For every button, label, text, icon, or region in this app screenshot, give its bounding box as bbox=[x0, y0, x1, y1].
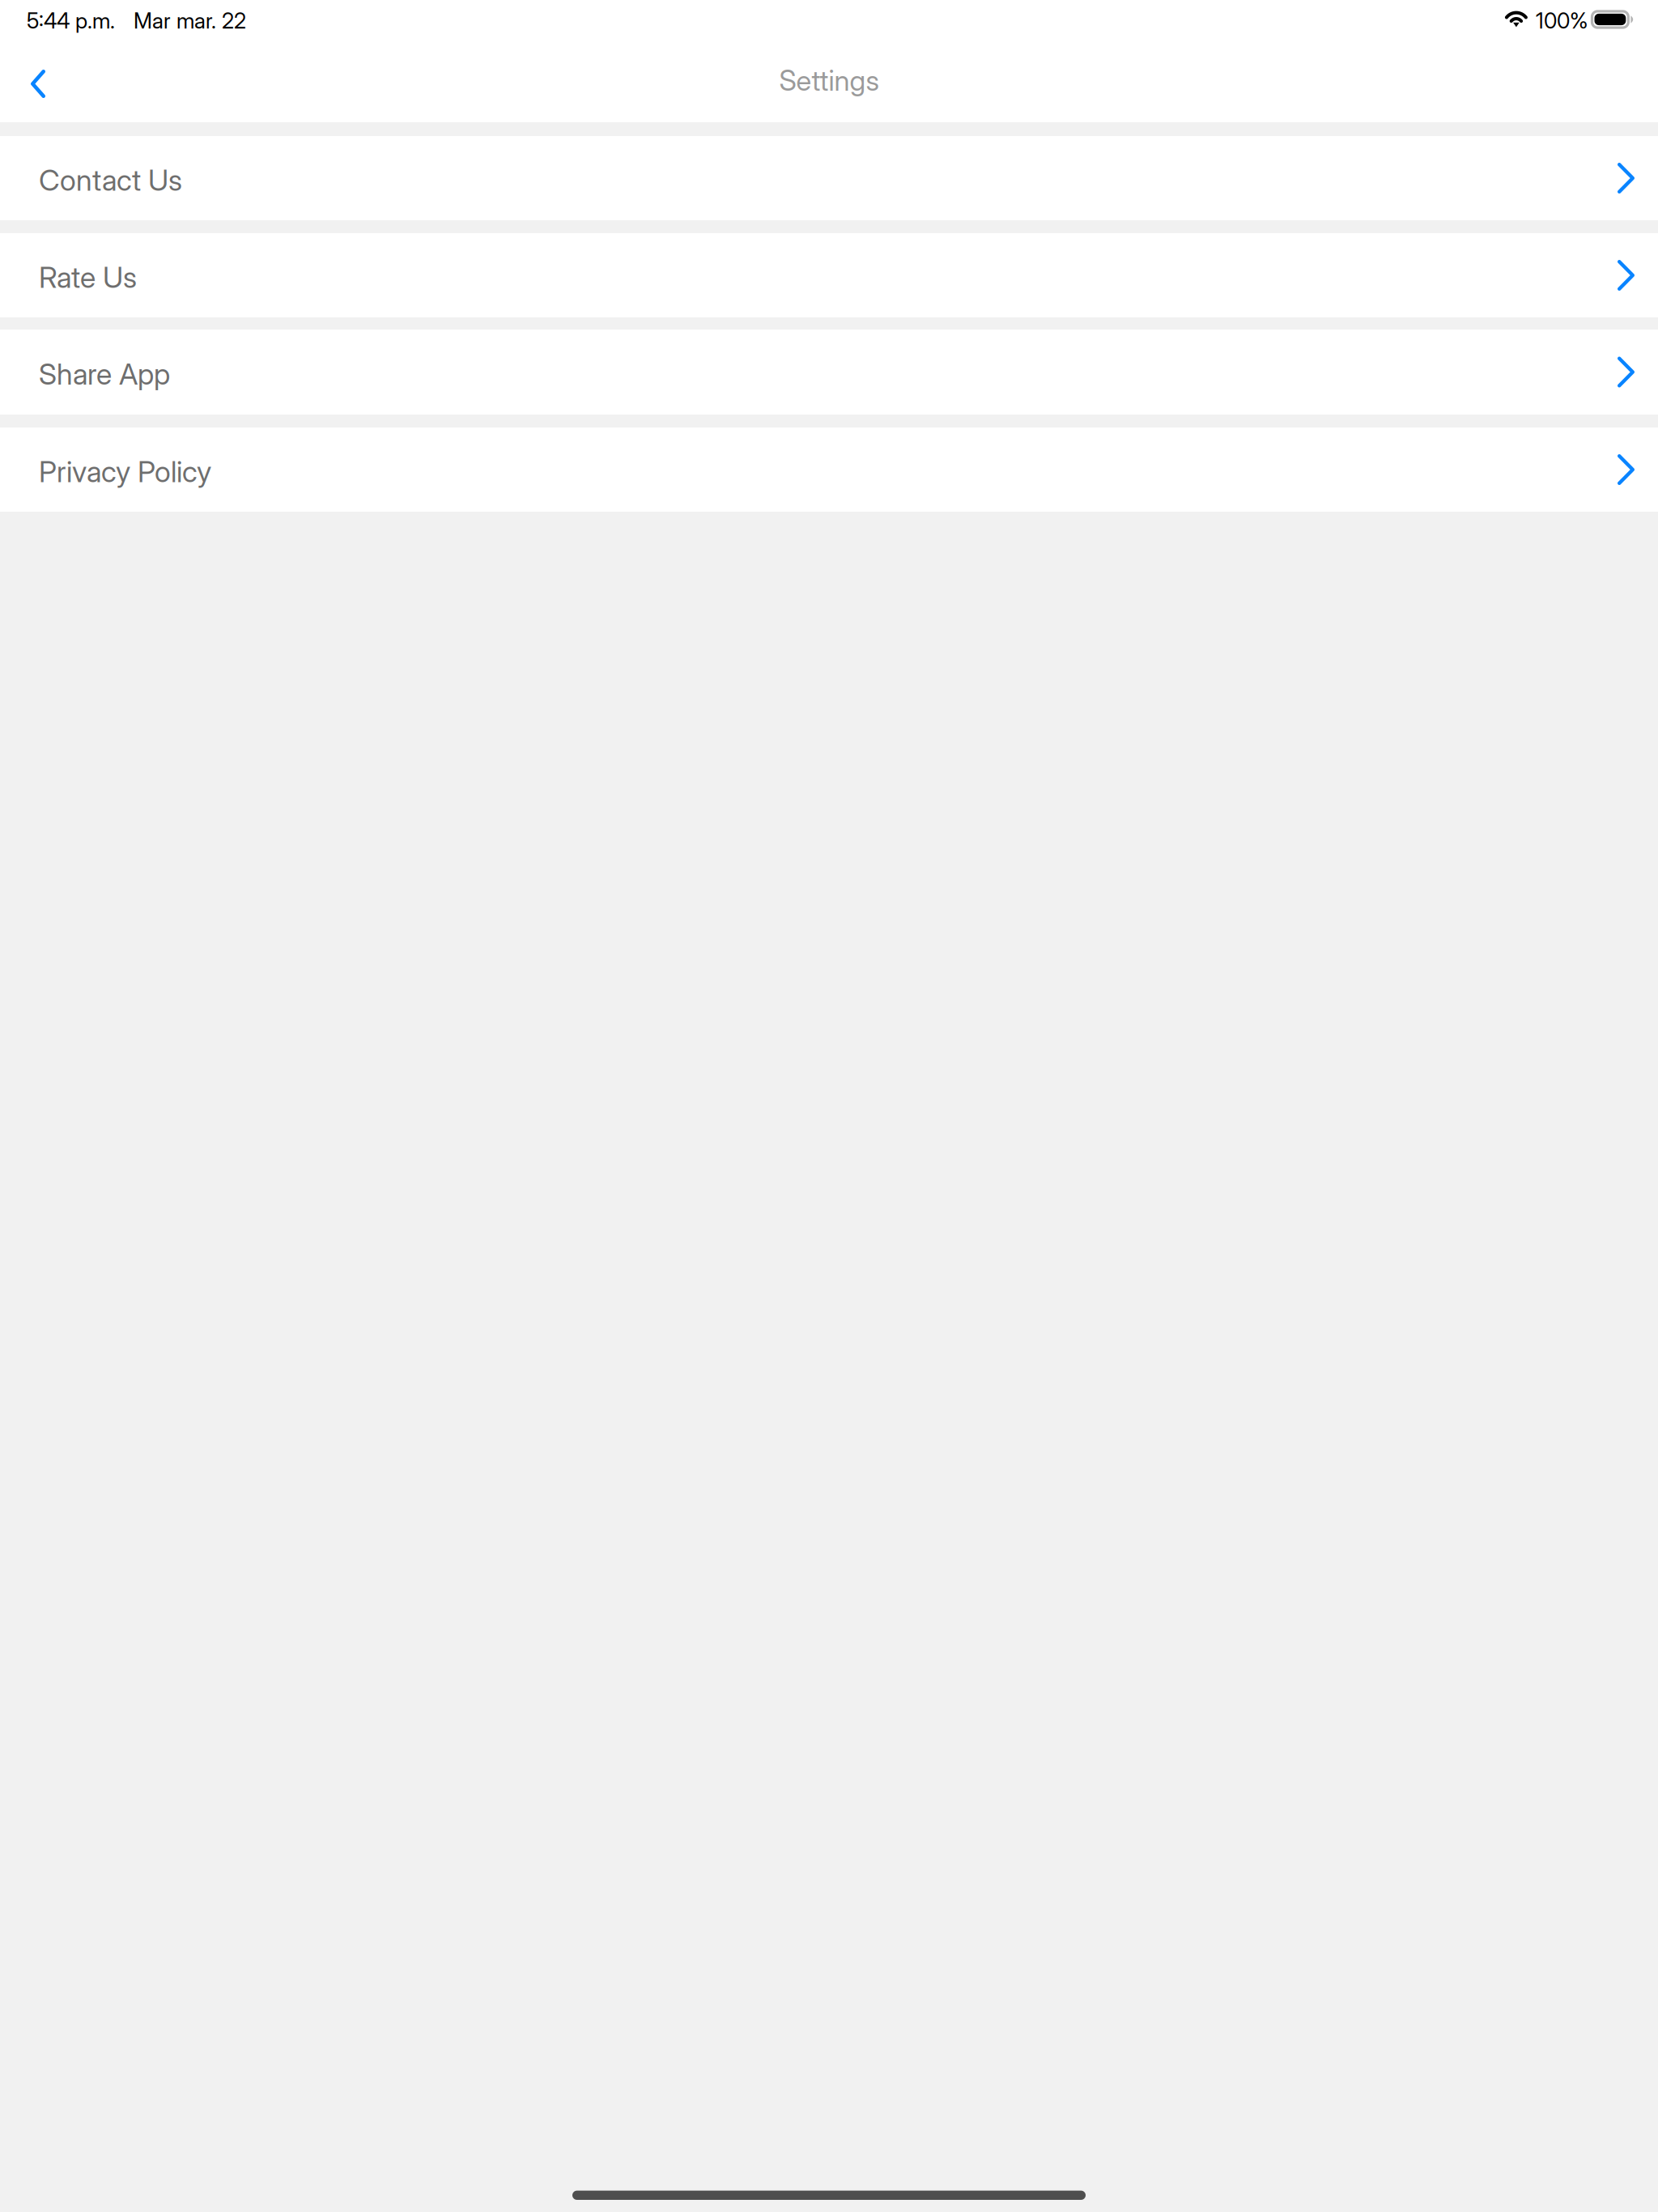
staticText: 100% bbox=[1536, 8, 1588, 34]
button[interactable]: Share App bbox=[0, 330, 1658, 415]
button[interactable]: Back bbox=[7, 51, 69, 117]
button[interactable]: Contact Us bbox=[0, 136, 1658, 220]
button[interactable]: Rate Us bbox=[0, 233, 1658, 317]
staticText: Contact Us bbox=[39, 163, 182, 198]
staticText: 5:44 p.m. bbox=[27, 8, 115, 34]
staticText: Settings bbox=[779, 64, 879, 97]
staticText: Privacy Policy bbox=[39, 454, 211, 489]
staticText: Rate Us bbox=[39, 260, 137, 295]
button[interactable]: Privacy Policy bbox=[0, 428, 1658, 512]
staticText: Share App bbox=[39, 357, 170, 392]
staticText: Mar mar. 22 bbox=[134, 8, 246, 34]
